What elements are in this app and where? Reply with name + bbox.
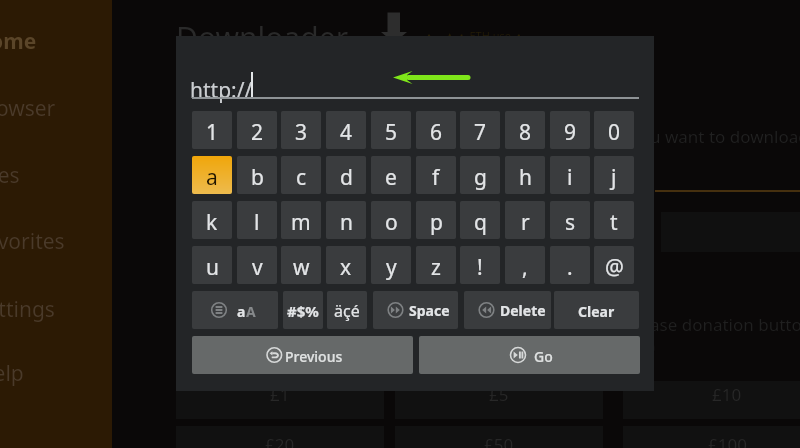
button[interactable]: k bbox=[192, 201, 232, 239]
button[interactable]: x bbox=[326, 246, 366, 284]
staticText: Clear bbox=[578, 302, 615, 321]
button[interactable]: Browser bbox=[0, 85, 112, 131]
staticText: A bbox=[246, 302, 256, 321]
button[interactable]: Downloads bbox=[380, 12, 408, 36]
button[interactable] bbox=[192, 60, 639, 98]
button[interactable]: o bbox=[371, 201, 411, 239]
button[interactable]: £5 bbox=[395, 381, 603, 419]
staticText: y bbox=[386, 253, 397, 282]
button[interactable]: u bbox=[192, 246, 232, 284]
button[interactable]: 9 bbox=[550, 111, 590, 149]
staticText: £10 bbox=[712, 383, 742, 406]
button[interactable]: 1 bbox=[192, 111, 232, 149]
staticText: £1 bbox=[270, 383, 290, 406]
button[interactable]: g bbox=[460, 156, 500, 194]
staticText: h bbox=[519, 163, 532, 192]
button[interactable]: a bbox=[192, 156, 232, 194]
button[interactable]: y bbox=[371, 246, 411, 284]
button[interactable]: Toggle letter case bbox=[192, 291, 278, 329]
staticText: m bbox=[291, 208, 311, 237]
staticText: n bbox=[340, 208, 353, 237]
staticText: 5 bbox=[385, 118, 398, 147]
button[interactable]: äçé bbox=[327, 291, 367, 329]
button[interactable]: Previous bbox=[192, 336, 413, 374]
staticText: Favorites bbox=[0, 227, 65, 256]
staticText: k bbox=[206, 208, 218, 237]
button[interactable]: Delete bbox=[464, 291, 551, 329]
button[interactable]: £1 bbox=[176, 381, 384, 419]
staticText: v bbox=[252, 253, 263, 282]
button[interactable]: Favorites bbox=[0, 218, 112, 264]
staticText: s bbox=[565, 208, 576, 237]
button[interactable]: Files bbox=[0, 152, 112, 198]
staticText: #$% bbox=[287, 301, 319, 321]
button[interactable]: @ bbox=[594, 246, 634, 284]
staticText: £20 bbox=[265, 433, 295, 448]
staticText: 2 bbox=[251, 118, 264, 147]
button[interactable]: ! bbox=[460, 246, 500, 284]
staticText: Settings bbox=[0, 295, 55, 324]
button[interactable]: l bbox=[237, 201, 277, 239]
staticText: 8 bbox=[519, 118, 532, 147]
button[interactable]: t bbox=[594, 201, 634, 239]
button[interactable]: £10 bbox=[623, 381, 800, 419]
button[interactable]: e bbox=[371, 156, 411, 194]
button[interactable]: 5 bbox=[371, 111, 411, 149]
button[interactable]: v bbox=[237, 246, 277, 284]
button[interactable]: d bbox=[326, 156, 366, 194]
button[interactable]: i bbox=[550, 156, 590, 194]
button[interactable]: 8 bbox=[505, 111, 545, 149]
staticText: e bbox=[385, 163, 397, 192]
button[interactable]: 0 bbox=[594, 111, 634, 149]
staticText: z bbox=[431, 253, 441, 282]
staticText: g bbox=[474, 163, 487, 192]
staticText: • ▲ • ETH use • bbox=[427, 28, 521, 43]
button[interactable]: . bbox=[550, 246, 590, 284]
button[interactable]: w bbox=[281, 246, 321, 284]
button[interactable]: r bbox=[505, 201, 545, 239]
staticText: Browser bbox=[0, 94, 56, 123]
staticText: c bbox=[296, 163, 307, 192]
button[interactable]: s bbox=[550, 201, 590, 239]
staticText: p bbox=[430, 208, 443, 237]
staticText: , bbox=[522, 253, 528, 282]
button[interactable]: p bbox=[416, 201, 456, 239]
staticText: d bbox=[340, 163, 353, 192]
staticText: ) bbox=[650, 335, 656, 358]
staticText: Help bbox=[0, 359, 24, 388]
staticText: Previous bbox=[285, 347, 343, 366]
button[interactable]: q bbox=[460, 201, 500, 239]
button[interactable]: h bbox=[505, 156, 545, 194]
button[interactable]: 3 bbox=[281, 111, 321, 149]
button[interactable]: Go bbox=[419, 336, 640, 374]
staticText: http:// bbox=[190, 76, 253, 105]
button[interactable]: c bbox=[281, 156, 321, 194]
button[interactable]: 6 bbox=[416, 111, 456, 149]
staticText: b bbox=[251, 163, 264, 192]
button[interactable]: Settings bbox=[0, 286, 112, 332]
button[interactable]: Space bbox=[373, 291, 458, 329]
button[interactable]: 4 bbox=[326, 111, 366, 149]
button[interactable]: #$% bbox=[283, 291, 323, 329]
button[interactable]: f bbox=[416, 156, 456, 194]
staticText: . bbox=[567, 253, 573, 282]
button[interactable]: , bbox=[505, 246, 545, 284]
button[interactable]: b bbox=[237, 156, 277, 194]
button[interactable]: z bbox=[416, 246, 456, 284]
button[interactable]: 2 bbox=[237, 111, 277, 149]
button[interactable]: j bbox=[594, 156, 634, 194]
button[interactable]: Home bbox=[0, 18, 112, 64]
button[interactable]: n bbox=[326, 201, 366, 239]
staticText: i bbox=[567, 163, 573, 192]
button[interactable]: m bbox=[281, 201, 321, 239]
staticText: 6 bbox=[430, 118, 443, 147]
staticText: 4 bbox=[340, 118, 353, 147]
button[interactable]: Help bbox=[0, 350, 112, 396]
button[interactable]: Clear bbox=[554, 291, 639, 329]
staticText: Space bbox=[409, 301, 450, 320]
button[interactable]: 7 bbox=[460, 111, 500, 149]
